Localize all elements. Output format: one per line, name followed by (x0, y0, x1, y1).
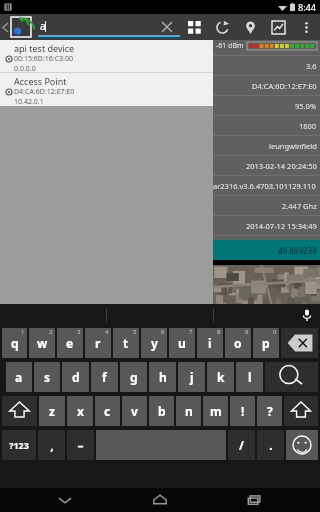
button[interactable]: c (95, 396, 120, 426)
button[interactable]: ar2316.v3.6.4703.101129.1107 (213, 176, 320, 196)
staticText: 49.889238 (278, 245, 317, 256)
button[interactable]: r (85, 328, 111, 358)
button[interactable]: 3.6 (213, 56, 320, 76)
button[interactable]: Refresh (208, 14, 236, 40)
staticText: u (178, 335, 186, 351)
button[interactable]: ? (257, 396, 282, 426)
staticText: leungwinfield (269, 141, 317, 151)
button[interactable]: ?123 (2, 430, 36, 460)
staticText: – (77, 437, 84, 453)
button[interactable]: – (67, 430, 94, 460)
staticText: o (234, 335, 242, 351)
staticText: f (102, 369, 107, 385)
button[interactable]: a (6, 362, 32, 392)
button[interactable]: . (257, 430, 284, 460)
button[interactable]: App icon (10, 16, 32, 38)
button[interactable]: Search (265, 362, 318, 392)
button[interactable]: x (67, 396, 93, 426)
button[interactable]: D4:CA:6D:12:E7:E0 (213, 76, 320, 96)
button[interactable]: a (38, 14, 180, 40)
button[interactable]: k (207, 362, 234, 392)
button[interactable]: e (57, 328, 83, 358)
button[interactable]: s (34, 362, 60, 392)
button[interactable]: api test device (0, 40, 213, 72)
button[interactable]: t (113, 328, 139, 358)
staticText: c (104, 403, 111, 419)
staticText: ar2316.v3.6.4703.101129.1107 (213, 181, 317, 191)
staticText: m (210, 403, 222, 419)
button[interactable]: , (38, 430, 65, 460)
button[interactable]: Hide keyboard (35, 488, 95, 512)
staticText: i (208, 335, 212, 351)
staticText: p (262, 335, 270, 351)
staticText: . (269, 437, 273, 453)
staticText: 2 (49, 328, 53, 336)
staticText: ?123 (9, 439, 29, 451)
staticText: t (123, 335, 129, 351)
button[interactable]: i (197, 328, 223, 358)
staticText: 1800 (299, 121, 317, 131)
staticText: r (95, 335, 101, 351)
button[interactable]: 95.0% (213, 96, 320, 116)
button[interactable]: ! (230, 396, 255, 426)
button[interactable]: l (236, 362, 263, 392)
button[interactable]: y (141, 328, 167, 358)
staticText: j (190, 369, 194, 385)
button[interactable]: More options (292, 14, 320, 40)
button[interactable]: n (176, 396, 201, 426)
staticText: l (248, 369, 252, 385)
staticText: 9 (245, 328, 249, 336)
button[interactable]: p (253, 328, 279, 358)
button[interactable]: z (39, 396, 65, 426)
button[interactable]: Backspace (281, 328, 318, 358)
button[interactable]: Chart (264, 14, 292, 40)
button[interactable]: / (228, 430, 255, 460)
button[interactable]: Clear (160, 20, 174, 34)
button[interactable]: d (62, 362, 89, 392)
button[interactable]: q (2, 328, 27, 358)
staticText: 8:44 (298, 1, 316, 13)
staticText: 0 (273, 328, 277, 336)
button[interactable]: -61 dBm (213, 36, 320, 56)
button[interactable]: u (169, 328, 195, 358)
staticText: , (50, 437, 54, 453)
staticText: 95.0% (295, 101, 317, 111)
staticText: D4:CA:6D:12:E7:E0 (14, 87, 75, 97)
button[interactable]: Access Point (0, 73, 213, 105)
staticText: 2014-07-12 15:34:49 (246, 221, 317, 231)
button[interactable]: Location (236, 14, 264, 40)
button[interactable]: f (91, 362, 118, 392)
button[interactable]: g (120, 362, 147, 392)
staticText: w (37, 335, 48, 351)
button[interactable]: b (149, 396, 174, 426)
button[interactable]: Emoji (286, 430, 318, 460)
button[interactable]: o (225, 328, 251, 358)
button[interactable]: j (178, 362, 205, 392)
button[interactable]: Voice input (300, 308, 314, 322)
button[interactable]: 1800 (213, 116, 320, 136)
button[interactable]: m (203, 396, 228, 426)
staticText: 2.447 Ghz (282, 201, 317, 211)
button[interactable]: Home (130, 488, 190, 512)
staticText: 4 (105, 328, 109, 336)
button[interactable]: v (122, 396, 147, 426)
staticText: 0.0.0.0 (14, 64, 36, 72)
button[interactable]: 2013-02-14 20:24:50 (213, 156, 320, 176)
button[interactable]: leungwinfield (213, 136, 320, 156)
button[interactable]: 2.447 Ghz (213, 196, 320, 216)
button[interactable]: w (29, 328, 55, 358)
button[interactable] (214, 304, 320, 326)
staticText: v (131, 403, 138, 419)
button[interactable]: h (149, 362, 176, 392)
staticText: D4:CA:6D:12:E7:E0 (252, 81, 317, 91)
button[interactable]: Recents (225, 488, 285, 512)
button[interactable]: Back (0, 14, 10, 40)
button[interactable]: Shift (284, 396, 318, 426)
button[interactable]: 2014-07-12 15:34:49 (213, 216, 320, 236)
button[interactable]: Grid (180, 14, 208, 40)
staticText: y (151, 335, 158, 351)
button[interactable]: Shift (2, 396, 37, 426)
